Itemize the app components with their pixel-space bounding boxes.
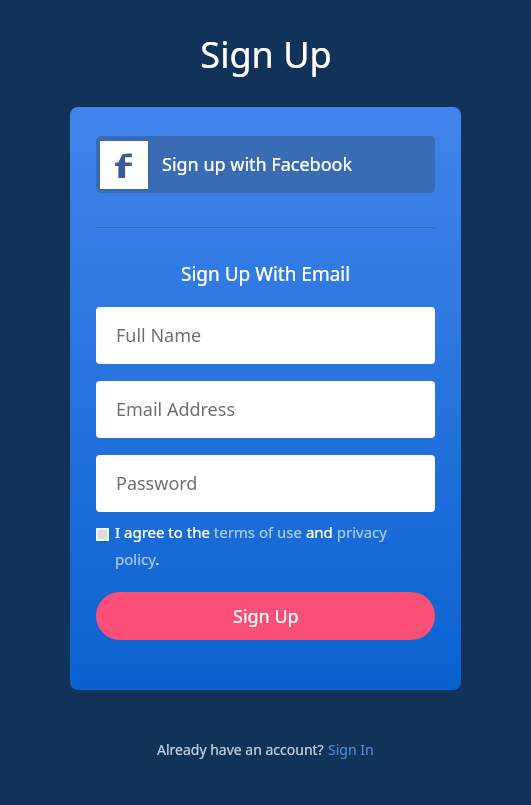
button[interactable]: Sign up with Facebook <box>96 136 435 193</box>
staticText: Full Name <box>116 323 202 348</box>
staticText: Sign In <box>328 740 374 759</box>
staticText: Sign up with Facebook <box>162 152 353 177</box>
button[interactable]: Password <box>96 455 435 512</box>
button[interactable]: I agree to terms checkbox <box>96 528 109 541</box>
button[interactable]: I agree to the terms of use and privacy … <box>115 522 435 570</box>
staticText: Sign Up <box>233 604 299 629</box>
staticText: Sign Up <box>200 30 332 79</box>
button[interactable]: Full Name <box>96 307 435 364</box>
staticText: Already have an account? <box>157 740 328 759</box>
button[interactable]: Sign Up <box>96 592 435 640</box>
staticText: I agree to the terms of use and privacy … <box>115 522 435 570</box>
staticText: Email Address <box>116 397 236 422</box>
staticText: Password <box>116 471 198 496</box>
button[interactable]: Sign In <box>328 740 374 759</box>
button[interactable]: Email Address <box>96 381 435 438</box>
staticText: Sign Up With Email <box>181 261 351 287</box>
